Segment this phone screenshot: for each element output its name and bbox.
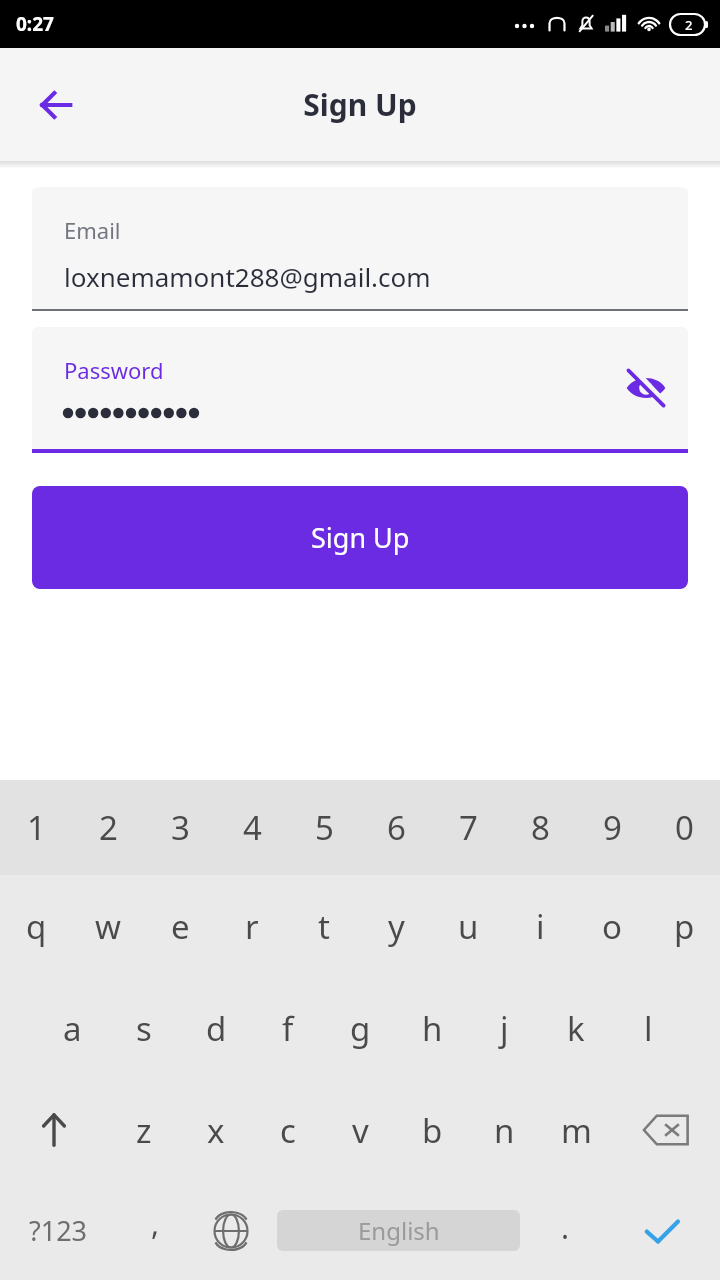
staticText: Sign Up bbox=[311, 519, 410, 556]
button[interactable]: Backspace bbox=[612, 1079, 720, 1181]
button[interactable]: r bbox=[216, 875, 288, 977]
button[interactable]: k bbox=[540, 977, 612, 1079]
staticText: 2 bbox=[685, 16, 693, 34]
button[interactable]: d bbox=[180, 977, 252, 1079]
staticText: b bbox=[422, 1108, 443, 1153]
button[interactable]: u bbox=[432, 875, 504, 977]
staticText: . bbox=[561, 1207, 570, 1248]
button[interactable]: t bbox=[288, 875, 360, 977]
button[interactable]: f bbox=[252, 977, 324, 1079]
staticText: c bbox=[280, 1108, 296, 1153]
staticText: z bbox=[136, 1108, 152, 1153]
button[interactable]: 3 bbox=[144, 780, 216, 875]
staticText: r bbox=[245, 904, 259, 949]
staticText: y bbox=[388, 904, 405, 949]
staticText: o bbox=[602, 904, 622, 949]
button[interactable]: 4 bbox=[216, 780, 288, 875]
button[interactable]: Shift bbox=[0, 1079, 108, 1181]
button[interactable]: . bbox=[527, 1181, 603, 1280]
staticText: a bbox=[63, 1006, 82, 1051]
staticText: p bbox=[674, 904, 695, 949]
staticText: 7 bbox=[459, 805, 478, 850]
button[interactable]: w bbox=[72, 875, 144, 977]
button[interactable]: y bbox=[360, 875, 432, 977]
button[interactable]: n bbox=[468, 1079, 540, 1181]
button[interactable]: 1 bbox=[0, 780, 72, 875]
button[interactable]: b bbox=[396, 1079, 468, 1181]
staticText: 3 bbox=[171, 805, 190, 850]
staticText: 8 bbox=[531, 805, 550, 850]
staticText: q bbox=[26, 904, 47, 949]
button[interactable]: 7 bbox=[432, 780, 504, 875]
button[interactable]: a bbox=[36, 977, 108, 1079]
button[interactable]: o bbox=[576, 875, 648, 977]
button[interactable]: 5 bbox=[288, 780, 360, 875]
button[interactable]: 8 bbox=[504, 780, 576, 875]
staticText: d bbox=[206, 1006, 227, 1051]
staticText: h bbox=[422, 1006, 443, 1051]
button[interactable]: 9 bbox=[576, 780, 648, 875]
button[interactable]: , bbox=[117, 1181, 193, 1280]
staticText: n bbox=[494, 1108, 515, 1153]
button[interactable]: 0 bbox=[648, 780, 720, 875]
button[interactable]: z bbox=[108, 1079, 180, 1181]
button[interactable]: English bbox=[277, 1210, 520, 1251]
button[interactable]: q bbox=[0, 875, 72, 977]
button[interactable]: Back bbox=[24, 73, 88, 137]
staticText: e bbox=[171, 904, 190, 949]
staticText: g bbox=[350, 1006, 371, 1051]
button[interactable]: Password bbox=[32, 327, 688, 453]
button[interactable]: s bbox=[108, 977, 180, 1079]
button[interactable]: Hide password bbox=[614, 356, 678, 420]
button[interactable]: c bbox=[252, 1079, 324, 1181]
staticText: loxnemamont288@gmail.com bbox=[64, 259, 431, 294]
button[interactable]: h bbox=[396, 977, 468, 1079]
staticText: 2 bbox=[99, 805, 118, 850]
staticText: Email bbox=[64, 215, 121, 245]
staticText: l bbox=[644, 1006, 653, 1051]
button[interactable]: j bbox=[468, 977, 540, 1079]
button[interactable]: g bbox=[324, 977, 396, 1079]
staticText: Password bbox=[64, 355, 164, 385]
button[interactable]: l bbox=[612, 977, 684, 1079]
button[interactable]: 6 bbox=[360, 780, 432, 875]
button[interactable]: Sign Up bbox=[32, 486, 688, 589]
staticText: t bbox=[318, 904, 330, 949]
staticText: 0:27 bbox=[16, 11, 54, 37]
button[interactable]: Email bbox=[32, 187, 688, 311]
button[interactable]: ?123 bbox=[0, 1181, 117, 1280]
staticText: i bbox=[536, 904, 545, 949]
staticText: 9 bbox=[603, 805, 622, 850]
staticText: , bbox=[151, 1203, 160, 1244]
staticText: w bbox=[95, 904, 121, 949]
staticText: x bbox=[207, 1108, 225, 1153]
staticText: 1 bbox=[27, 805, 46, 850]
staticText: Sign Up bbox=[303, 84, 417, 125]
staticText: English bbox=[358, 1214, 440, 1247]
staticText: 0 bbox=[675, 805, 694, 850]
staticText: k bbox=[567, 1006, 585, 1051]
staticText: m bbox=[561, 1108, 592, 1153]
button[interactable]: 2 bbox=[72, 780, 144, 875]
staticText: u bbox=[458, 904, 479, 949]
button[interactable]: m bbox=[540, 1079, 612, 1181]
staticText: 6 bbox=[387, 805, 406, 850]
button[interactable]: p bbox=[648, 875, 720, 977]
staticText: j bbox=[500, 1006, 509, 1051]
staticText: s bbox=[136, 1006, 152, 1051]
staticText: ?123 bbox=[29, 1212, 88, 1249]
staticText: f bbox=[282, 1006, 294, 1051]
button[interactable]: x bbox=[180, 1079, 252, 1181]
button[interactable]: i bbox=[504, 875, 576, 977]
button[interactable]: v bbox=[324, 1079, 396, 1181]
staticText: 4 bbox=[243, 805, 262, 850]
button[interactable]: Done bbox=[603, 1181, 720, 1280]
staticText: 5 bbox=[315, 805, 334, 850]
button[interactable]: Change language bbox=[193, 1181, 269, 1280]
staticText: v bbox=[352, 1108, 369, 1153]
button[interactable]: e bbox=[144, 875, 216, 977]
